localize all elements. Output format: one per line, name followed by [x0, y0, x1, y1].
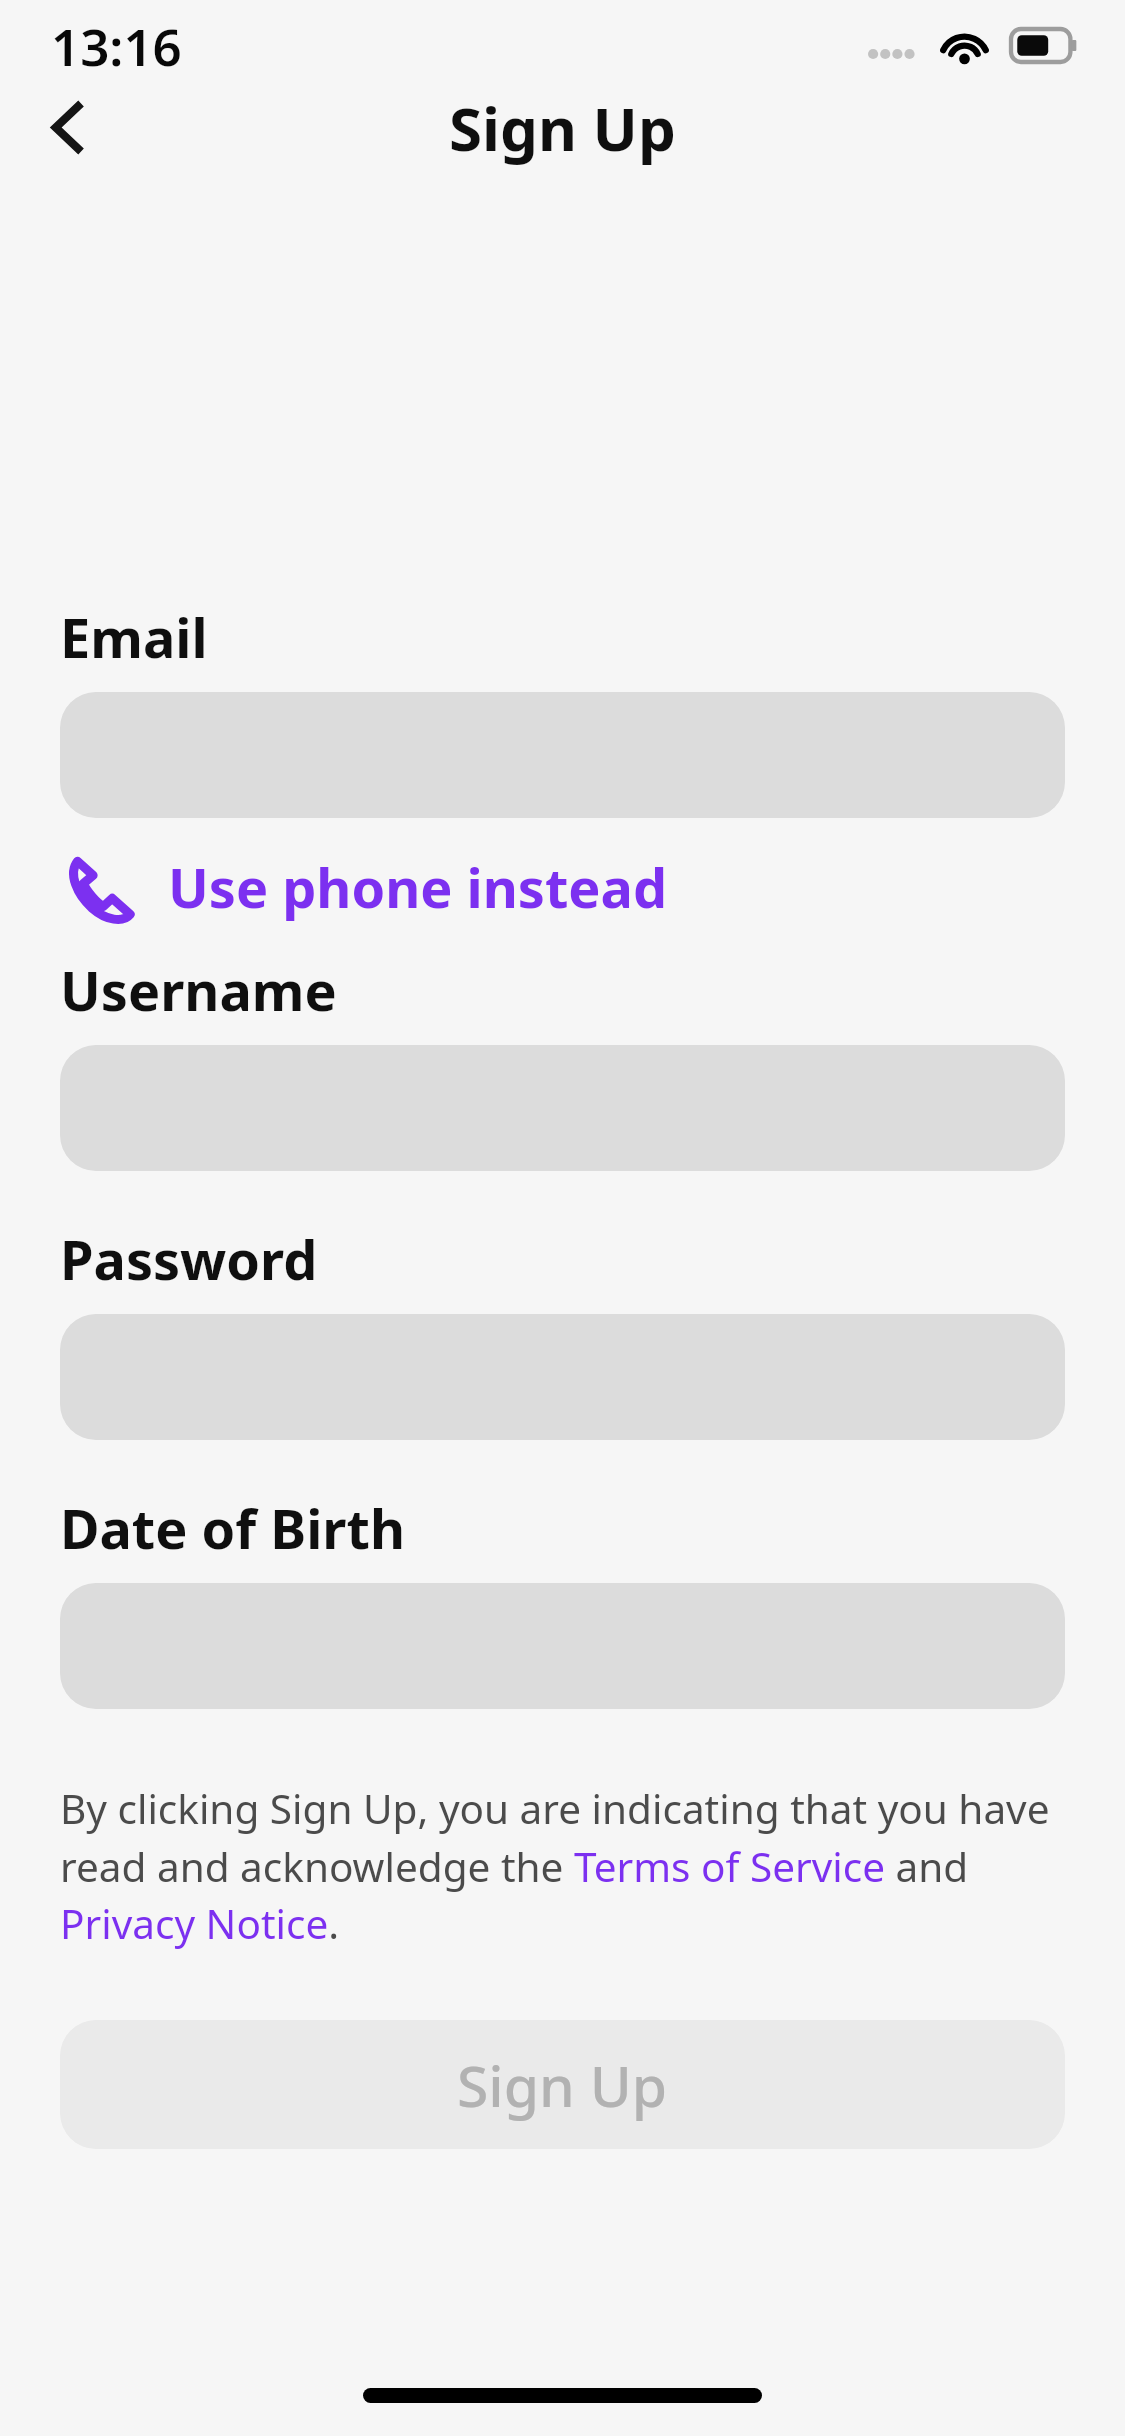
- staticText: Sign Up: [449, 87, 676, 169]
- staticText: Sign Up: [457, 2046, 668, 2124]
- staticText: 13:16: [51, 11, 182, 80]
- staticText: Username: [60, 953, 337, 1027]
- button[interactable]: Back: [6, 84, 126, 171]
- staticText: Email: [60, 600, 208, 674]
- staticText: By clicking Sign Up, you are indicating …: [60, 1781, 1065, 1951]
- button[interactable]: Sign Up: [60, 2020, 1065, 2149]
- button[interactable]: Use phone instead: [60, 848, 668, 926]
- staticText: Date of Birth: [60, 1491, 406, 1565]
- staticText: Use phone instead: [168, 850, 668, 924]
- staticText: Password: [60, 1222, 318, 1296]
